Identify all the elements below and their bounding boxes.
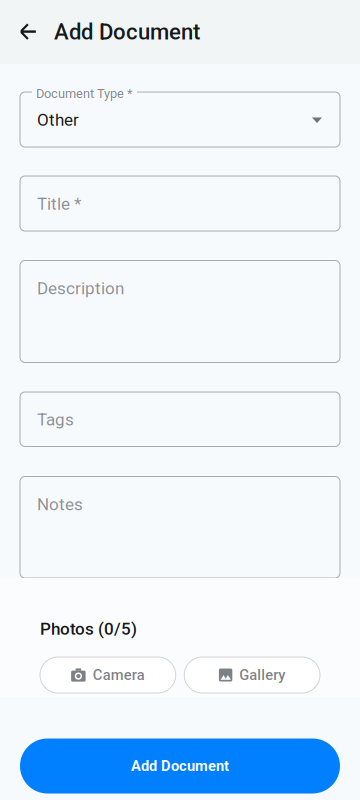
staticText: Other bbox=[37, 110, 79, 130]
staticText: Gallery bbox=[239, 666, 285, 684]
staticText: Tags bbox=[37, 410, 74, 430]
staticText: Notes bbox=[37, 494, 83, 514]
staticText: Document Type * bbox=[36, 86, 133, 101]
staticText: Title * bbox=[37, 194, 81, 214]
staticText: Camera bbox=[93, 666, 145, 684]
staticText: Add Document bbox=[54, 19, 200, 45]
button[interactable]: Add Document bbox=[20, 738, 340, 793]
button[interactable]: Camera bbox=[40, 657, 176, 693]
button[interactable]: Gallery bbox=[184, 657, 320, 693]
staticText: Photos (0/5) bbox=[40, 619, 137, 639]
staticText: Description bbox=[37, 278, 124, 298]
staticText: Add Document bbox=[131, 757, 229, 775]
button[interactable]: Back bbox=[10, 10, 46, 54]
